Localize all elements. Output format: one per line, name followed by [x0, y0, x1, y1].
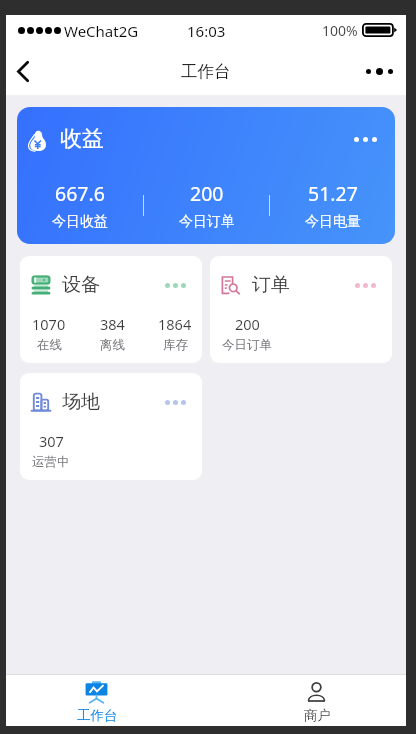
button[interactable]: 工作台: [6, 675, 206, 726]
staticText: 今日订单: [222, 337, 272, 353]
button[interactable]: More options: [358, 51, 400, 93]
staticText: 库存: [163, 337, 188, 353]
button[interactable]: Back: [6, 53, 42, 89]
staticText: 设备: [62, 273, 100, 297]
staticText: 今日订单: [179, 213, 235, 231]
staticText: 工作台: [181, 61, 231, 82]
staticText: 在线: [37, 337, 62, 353]
staticText: 307: [39, 431, 64, 451]
staticText: 收益: [60, 125, 104, 153]
button[interactable]: 设备: [20, 256, 202, 363]
staticText: 384: [100, 314, 125, 334]
staticText: 运营中: [32, 454, 70, 470]
staticText: 51.27: [308, 180, 358, 207]
staticText: 场地: [62, 390, 100, 414]
staticText: 200: [235, 314, 260, 334]
staticText: 工作台: [77, 707, 118, 724]
staticText: 离线: [100, 337, 125, 353]
button[interactable]: 场地: [20, 373, 202, 480]
staticText: 100%: [322, 21, 358, 40]
button[interactable]: 商户: [206, 675, 406, 726]
staticText: WeChat2G: [64, 21, 139, 41]
staticText: 1864: [158, 314, 192, 334]
staticText: 667.6: [55, 180, 105, 207]
button[interactable]: 订单: [210, 256, 392, 363]
staticText: 200: [190, 180, 224, 207]
staticText: 商户: [304, 707, 331, 724]
staticText: 16:03: [187, 21, 226, 41]
staticText: 今日电量: [305, 213, 361, 231]
staticText: 1070: [32, 314, 66, 334]
staticText: 订单: [252, 273, 290, 297]
staticText: 今日收益: [52, 213, 108, 231]
button[interactable]: 收益: [17, 107, 395, 244]
